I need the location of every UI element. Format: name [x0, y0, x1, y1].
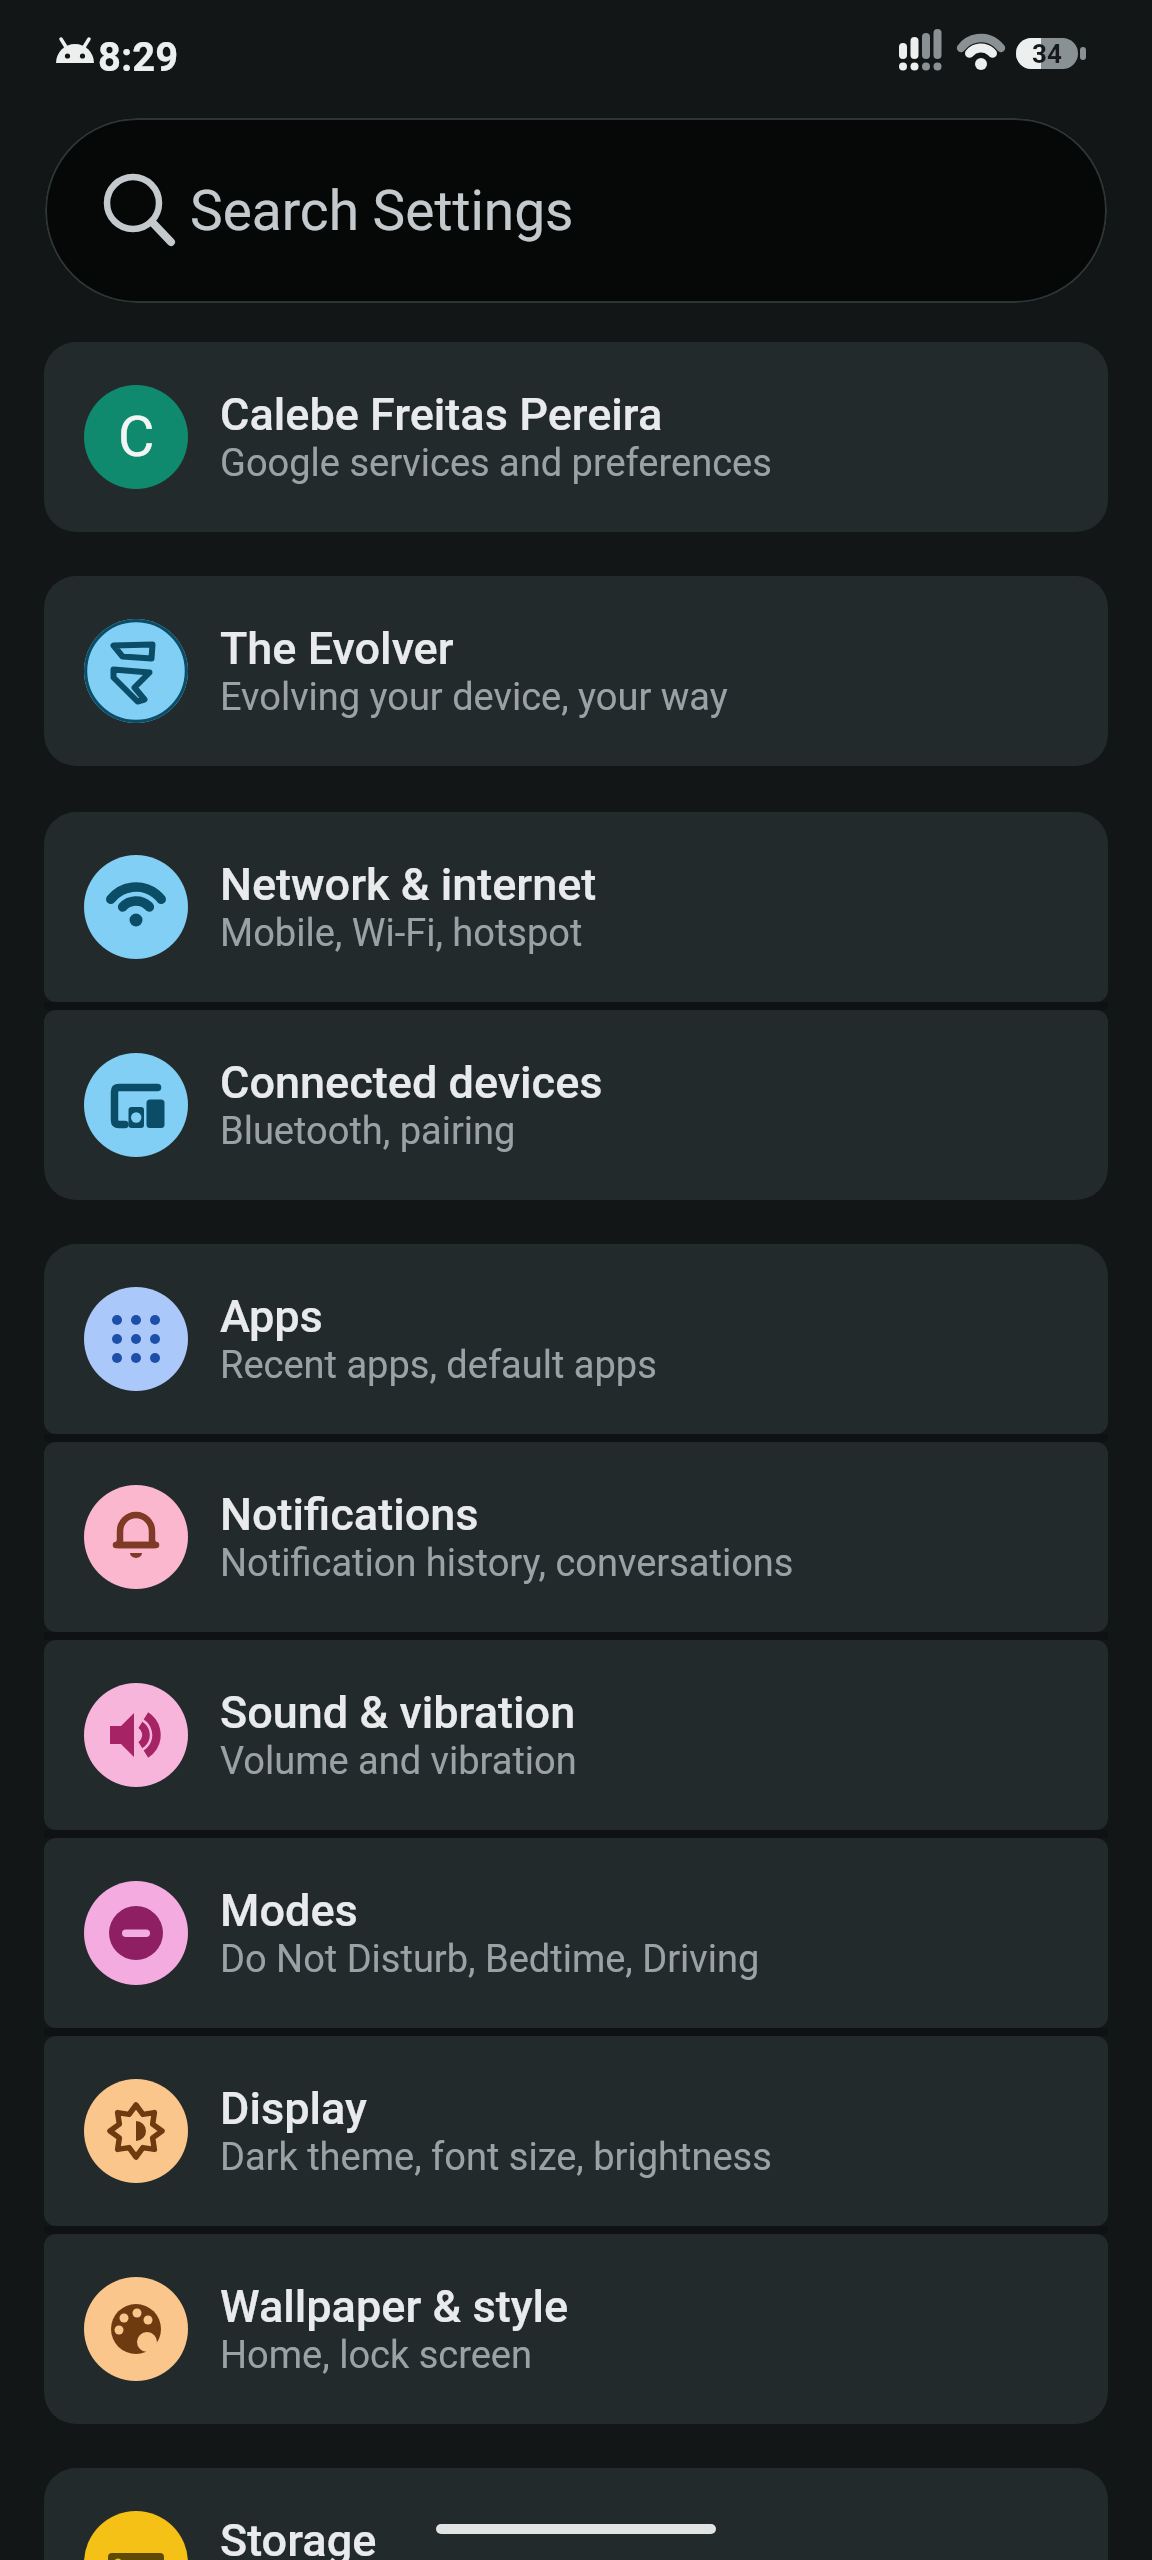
- button[interactable]: Storage: [44, 2468, 1108, 2560]
- button[interactable]: Search Settings: [45, 118, 1107, 303]
- staticText: Display: [220, 2082, 367, 2135]
- staticText: Notifications: [220, 1488, 479, 1541]
- staticText: Sound & vibration: [220, 1686, 576, 1739]
- staticText: Mobile, Wi-Fi, hotspot: [220, 911, 583, 956]
- staticText: Dark theme, font size, brightness: [220, 2135, 772, 2180]
- staticText: 8:29: [98, 34, 179, 81]
- staticText: Connected devices: [220, 1056, 603, 1109]
- staticText: Calebe Freitas Pereira: [220, 388, 663, 441]
- staticText: Bluetooth, pairing: [220, 1109, 516, 1154]
- staticText: Volume and vibration: [220, 1739, 577, 1784]
- button[interactable]: C: [44, 342, 1108, 532]
- staticText: Evolving your device, your way: [220, 675, 728, 720]
- staticText: Modes: [220, 1884, 358, 1937]
- button[interactable]: Apps: [44, 1244, 1108, 1434]
- button[interactable]: Modes: [44, 1838, 1108, 2028]
- staticText: Search Settings: [190, 179, 574, 243]
- button[interactable]: Network & internet: [44, 812, 1108, 1002]
- button[interactable]: Wallpaper & style: [44, 2234, 1108, 2424]
- staticText: C: [118, 404, 155, 470]
- button[interactable]: Display: [44, 2036, 1108, 2226]
- staticText: Network & internet: [220, 858, 597, 911]
- staticText: Storage: [220, 2514, 377, 2560]
- button[interactable]: Sound & vibration: [44, 1640, 1108, 1830]
- staticText: Apps: [220, 1290, 323, 1343]
- staticText: Google services and preferences: [220, 441, 772, 486]
- button[interactable]: The Evolver: [44, 576, 1108, 766]
- button[interactable]: Notifications: [44, 1442, 1108, 1632]
- button[interactable]: Connected devices: [44, 1010, 1108, 1200]
- staticText: Notification history, conversations: [220, 1541, 794, 1586]
- staticText: The Evolver: [220, 622, 454, 675]
- staticText: Wallpaper & style: [220, 2280, 569, 2333]
- staticText: Do Not Disturb, Bedtime, Driving: [220, 1937, 760, 1982]
- staticText: 34: [1032, 39, 1062, 69]
- staticText: Recent apps, default apps: [220, 1343, 657, 1388]
- staticText: Home, lock screen: [220, 2333, 532, 2378]
